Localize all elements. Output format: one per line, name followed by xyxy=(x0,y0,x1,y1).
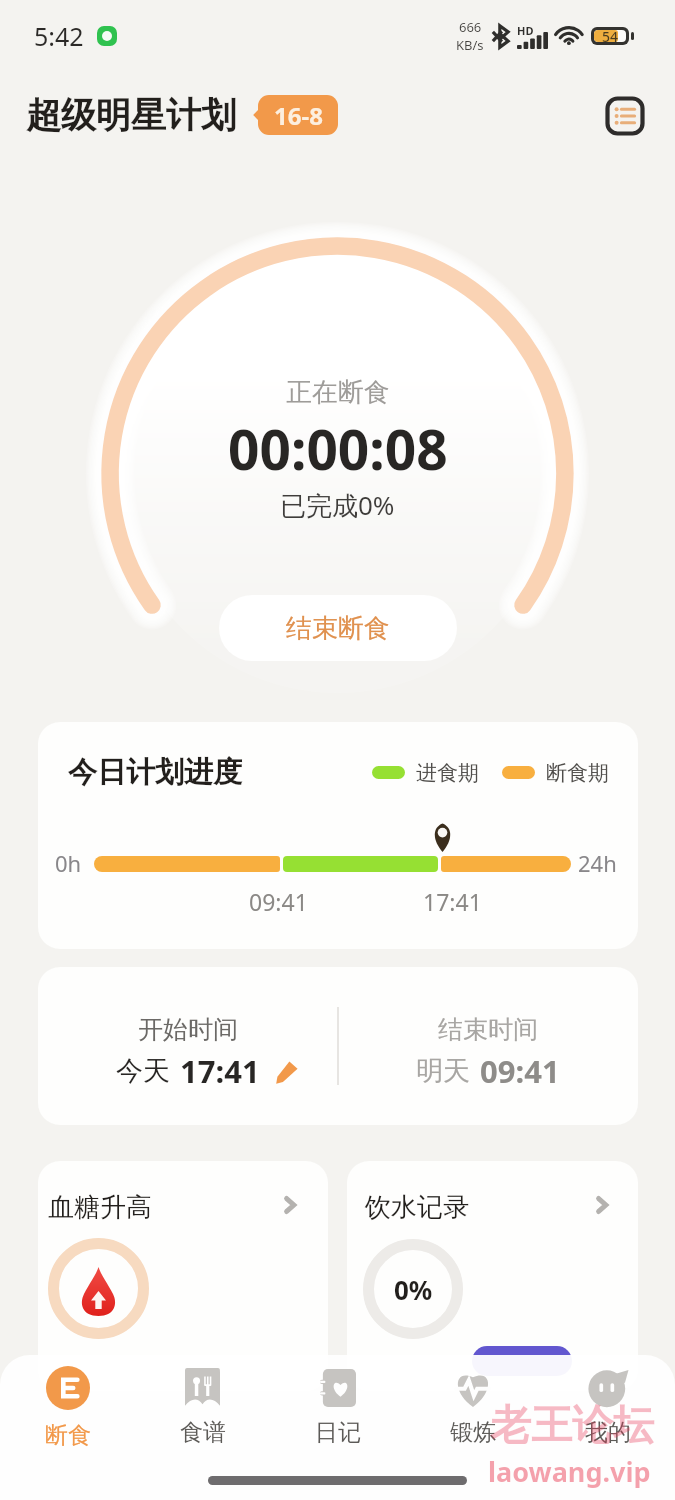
staticText: 老王论坛 xyxy=(490,1400,654,1452)
staticText: 已完成0% xyxy=(280,487,395,523)
staticText: 超级明星计划 xyxy=(26,93,236,137)
staticText: 断食期 xyxy=(546,760,609,786)
staticText: 今日计划进度 xyxy=(68,754,242,791)
button[interactable]: 饮水记录 xyxy=(347,1161,638,1391)
button[interactable]: 结束断食 xyxy=(219,595,457,661)
staticText: laowang.vip xyxy=(488,1453,651,1490)
staticText: 进食期 xyxy=(416,760,479,786)
button[interactable]: 锻炼 xyxy=(405,1355,540,1460)
staticText: 今天 xyxy=(116,1054,170,1088)
staticText: 17:41 xyxy=(180,1050,260,1092)
staticText: 正在断食 xyxy=(286,376,390,409)
staticText: 54 xyxy=(602,27,619,45)
button[interactable]: 食谱 xyxy=(135,1355,270,1460)
staticText: 0% xyxy=(394,1272,433,1307)
staticText: 0h xyxy=(55,848,82,878)
staticText: 09:41 xyxy=(249,886,308,917)
staticText: 断食 xyxy=(45,1421,91,1450)
staticText: 我的 xyxy=(585,1418,631,1447)
staticText: 17:41 xyxy=(423,886,482,917)
staticText: 5:42 xyxy=(34,19,84,53)
staticText: 食谱 xyxy=(180,1418,226,1447)
staticText: 开始时间 xyxy=(138,1014,238,1045)
staticText: KB/s xyxy=(456,36,484,54)
staticText: 日记 xyxy=(315,1418,361,1447)
staticText: 16-8 xyxy=(274,99,323,132)
staticText: 00:00:08 xyxy=(228,411,448,486)
button[interactable]: 血糖升高 xyxy=(38,1161,328,1391)
staticText: 饮水记录 xyxy=(365,1191,469,1224)
button[interactable]: 我的 xyxy=(540,1355,675,1460)
staticText: 666 xyxy=(459,18,482,36)
staticText: 24h xyxy=(578,848,617,878)
staticText: 结束断食 xyxy=(286,612,390,645)
staticText: 锻炼 xyxy=(450,1418,496,1447)
staticText: 结束时间 xyxy=(438,1014,538,1045)
staticText: 09:41 xyxy=(480,1050,560,1092)
staticText: 明天 xyxy=(416,1054,470,1088)
button[interactable]: Plan list xyxy=(603,94,647,138)
staticText: HD xyxy=(517,23,534,38)
button[interactable]: 断食 xyxy=(0,1355,135,1460)
button[interactable]: 日记 xyxy=(270,1355,405,1460)
staticText: 血糖升高 xyxy=(48,1191,152,1224)
